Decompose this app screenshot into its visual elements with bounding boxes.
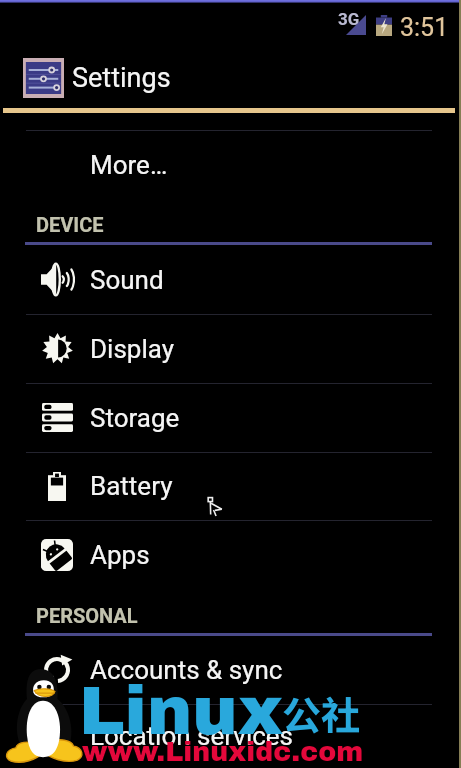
- staticText: 3:51: [400, 13, 449, 42]
- staticText: Apps: [90, 540, 150, 570]
- button[interactable]: Battery: [0, 452, 461, 520]
- staticText: 公社: [282, 685, 361, 741]
- button[interactable]: Accounts and sync: [0, 636, 461, 704]
- staticText: Settings: [72, 62, 171, 94]
- button[interactable]: Sound: [0, 245, 461, 314]
- button[interactable]: Location services: [0, 704, 461, 768]
- staticText: PERSONAL: [36, 604, 138, 627]
- staticText: Location services: [90, 721, 294, 751]
- button[interactable]: Settings: [0, 47, 461, 109]
- staticText: 3G: [338, 9, 360, 29]
- button[interactable]: Apps: [0, 520, 461, 589]
- staticText: Accounts & sync: [90, 655, 283, 685]
- staticText: Storage: [90, 403, 180, 433]
- staticText: Display: [90, 334, 174, 364]
- button[interactable]: More: [0, 130, 461, 199]
- button[interactable]: Storage: [0, 383, 461, 452]
- staticText: Battery: [90, 471, 173, 501]
- staticText: Linux: [79, 674, 284, 748]
- staticText: Sound: [90, 265, 164, 295]
- button[interactable]: Display: [0, 314, 461, 383]
- staticText: www.Linuxidc.com: [82, 737, 364, 766]
- staticText: DEVICE: [36, 213, 104, 236]
- staticText: More…: [90, 150, 168, 180]
